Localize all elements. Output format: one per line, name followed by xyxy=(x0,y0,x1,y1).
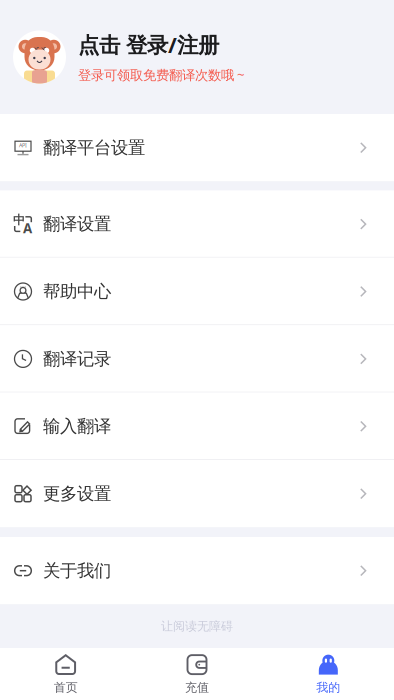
button[interactable]: 更多设置 xyxy=(0,460,394,527)
staticText: 登录可领取免费翻译次数哦 ~ xyxy=(78,66,245,83)
button[interactable]: 首页 xyxy=(0,648,131,700)
staticText: 输入翻译 xyxy=(43,416,111,437)
staticText: 翻译平台设置 xyxy=(43,137,145,158)
staticText: 更多设置 xyxy=(43,483,111,504)
staticText: 让阅读无障碍 xyxy=(161,619,233,633)
staticText: 关于我们 xyxy=(43,560,111,581)
button[interactable]: 关于我们 xyxy=(0,537,394,604)
button[interactable]: 我的 xyxy=(263,648,394,700)
staticText: 翻译记录 xyxy=(43,348,111,370)
staticText: 我的 xyxy=(316,680,340,695)
staticText: 帮助中心 xyxy=(43,281,111,302)
staticText: A xyxy=(23,219,32,237)
button[interactable]: 输入翻译 xyxy=(0,393,394,460)
button[interactable]: API xyxy=(0,114,394,181)
button[interactable]: 翻译记录 xyxy=(0,325,394,393)
staticText: 翻译设置 xyxy=(43,213,111,235)
button[interactable]: 帮助中心 xyxy=(0,258,394,325)
button[interactable]: ヾヾ xyxy=(0,0,394,114)
staticText: 充值 xyxy=(185,680,209,695)
button[interactable]: 充值 xyxy=(131,648,263,700)
staticText: API xyxy=(19,142,27,149)
staticText: 中 xyxy=(13,213,25,227)
staticText: 点击 登录/注册 xyxy=(78,30,219,59)
staticText: 首页 xyxy=(54,680,78,695)
staticText: ヾヾ xyxy=(32,45,46,54)
button[interactable]: 中 xyxy=(0,190,394,258)
